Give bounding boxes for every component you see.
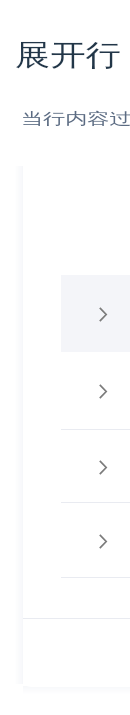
staticText: 当行内容过多时可以展开 [21, 109, 130, 128]
button[interactable]: 展开行 [23, 430, 130, 503]
button[interactable]: 展开行 [23, 352, 130, 430]
button[interactable]: 展开行 [95, 533, 111, 549]
staticText: 展开行 [15, 37, 121, 74]
button[interactable]: 展开行 [23, 275, 130, 352]
button[interactable]: 展开行 [23, 503, 130, 578]
button[interactable]: 展开行 [95, 383, 111, 399]
button[interactable]: 展开行 [95, 459, 111, 475]
button[interactable]: 展开行 [95, 306, 111, 322]
